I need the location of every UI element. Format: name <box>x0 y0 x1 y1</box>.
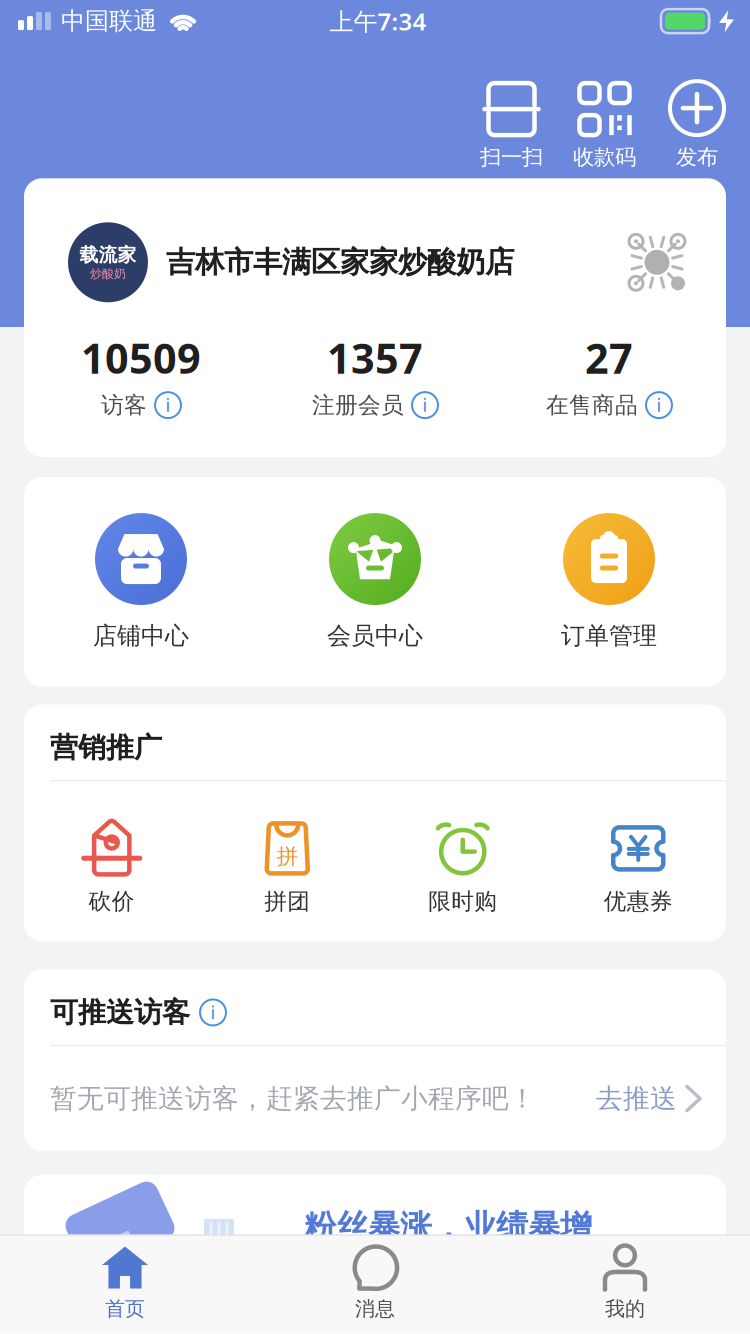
button[interactable]: 我的 <box>500 1245 750 1321</box>
button[interactable]: 拼 <box>199 819 375 915</box>
staticText: 暂无可推送访客，赶紧去推广小程序吧！ <box>50 1082 536 1115</box>
staticText: 优惠券 <box>604 887 673 915</box>
staticText: 砍价 <box>89 887 135 915</box>
staticText: i <box>422 394 427 417</box>
staticText: 注册会员 <box>312 391 404 419</box>
button[interactable]: 说明 <box>412 392 438 418</box>
button[interactable]: 小程序码 <box>626 231 688 293</box>
staticText: 拼 <box>277 843 298 869</box>
staticText: 消息 <box>355 1296 395 1321</box>
staticText: 我的 <box>605 1296 645 1321</box>
staticText: 粉丝暴涨，业绩暴增 <box>304 1207 592 1246</box>
staticText: 订单管理 <box>561 621 657 650</box>
button[interactable]: 店铺中心 <box>24 513 258 650</box>
button[interactable]: 发布 <box>670 81 724 170</box>
staticText: 营销推广 <box>50 730 162 765</box>
button[interactable]: 暂无可推送访客，赶紧去推广小程序吧！ <box>24 1046 726 1151</box>
staticText: 首页 <box>105 1296 145 1321</box>
button[interactable]: 会员中心 <box>258 513 492 650</box>
staticText: 载流家 <box>79 243 136 266</box>
button[interactable]: 收款码 <box>573 83 636 170</box>
button[interactable]: 优惠券 <box>550 819 726 915</box>
staticText: 去推送 <box>596 1082 677 1115</box>
staticText: 拼团 <box>264 887 310 915</box>
staticText: 1357 <box>327 330 423 385</box>
staticText: 上午7:34 <box>329 5 426 37</box>
button[interactable]: 粉丝暴涨，业绩暴增 <box>24 1175 726 1334</box>
staticText: i <box>656 394 661 417</box>
staticText: i <box>210 1001 215 1024</box>
staticText: 扫一扫 <box>480 144 543 170</box>
button[interactable]: 说明 <box>155 392 181 418</box>
staticText: 限时购 <box>428 887 497 915</box>
staticText: 发布 <box>676 144 718 170</box>
staticText: 可推送访客 <box>50 995 190 1030</box>
staticText: 27 <box>585 330 633 385</box>
button[interactable]: 扫一扫 <box>480 83 543 170</box>
staticText: 会员中心 <box>327 621 423 650</box>
staticText: 炒酸奶 <box>90 266 126 281</box>
button[interactable]: 说明 <box>200 999 226 1025</box>
staticText: i <box>165 394 170 417</box>
button[interactable]: 订单管理 <box>492 513 726 650</box>
staticText: 吉林市丰满区家家炒酸奶店 <box>166 244 514 280</box>
staticText: 在售商品 <box>546 391 638 419</box>
staticText: 10509 <box>81 330 201 385</box>
button[interactable]: 砍价 <box>24 819 199 915</box>
staticText: 访客 <box>101 391 147 419</box>
button[interactable]: 消息 <box>250 1245 500 1321</box>
button[interactable]: 说明 <box>646 392 672 418</box>
button[interactable]: 首页 <box>0 1245 250 1321</box>
staticText: 收款码 <box>573 144 636 170</box>
staticText: 店铺中心 <box>93 621 189 650</box>
staticText: 中国联通 <box>61 6 157 36</box>
button[interactable]: 限时购 <box>375 819 550 915</box>
